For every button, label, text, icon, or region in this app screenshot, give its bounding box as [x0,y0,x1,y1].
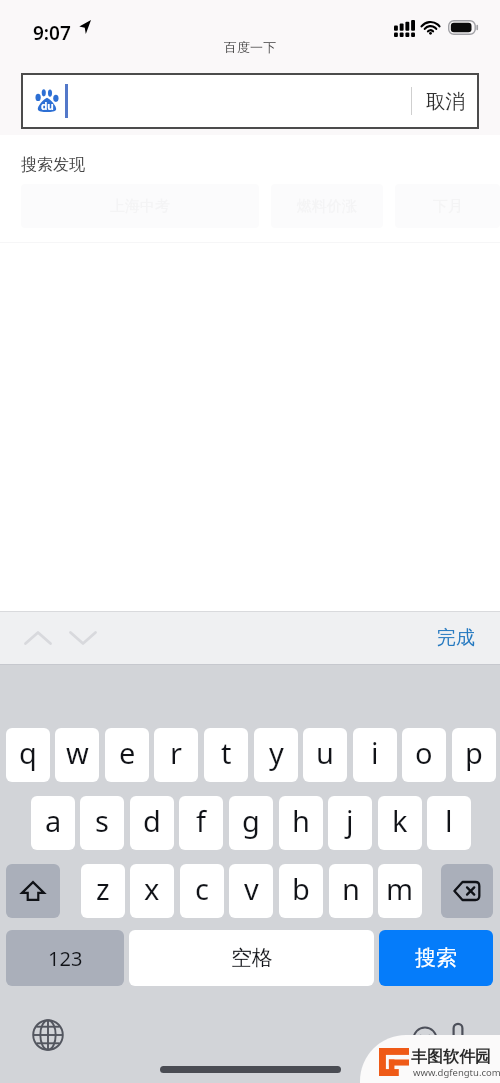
staticText: d [143,801,161,840]
button[interactable]: y [254,728,298,782]
button[interactable]: Backspace [441,864,493,918]
staticText: y [269,733,284,772]
staticText: q [19,733,37,772]
button[interactable]: q [6,728,50,782]
button[interactable]: d [130,796,174,850]
button[interactable]: u [303,728,347,782]
button[interactable]: b [279,864,323,918]
staticText: 完成 [437,626,475,650]
button[interactable]: i [353,728,397,782]
button[interactable]: x [130,864,174,918]
staticText: o [415,733,433,772]
staticText: f [196,801,206,840]
button[interactable]: s [80,796,124,850]
button[interactable]: v [229,864,273,918]
staticText: c [195,869,209,908]
button[interactable]: h [279,796,323,850]
staticText: r [170,733,182,772]
button[interactable]: f [179,796,223,850]
button[interactable]: k [378,796,422,850]
button[interactable]: j [328,796,372,850]
button[interactable]: r [154,728,198,782]
button[interactable]: w [55,728,99,782]
button[interactable]: l [427,796,471,850]
button[interactable]: Shift [6,864,60,918]
staticText: u [316,733,334,772]
staticText: du [41,99,54,113]
button[interactable]: z [81,864,125,918]
button[interactable]: Voice input [444,1021,472,1049]
button[interactable]: Previous field [16,616,60,660]
staticText: m [386,869,414,908]
button[interactable]: g [229,796,273,850]
staticText: 123 [48,945,83,972]
staticText: t [221,733,232,772]
staticText: j [346,801,354,840]
button[interactable]: o [402,728,446,782]
button[interactable]: 搜索 [379,930,493,986]
staticText: k [392,801,408,840]
staticText: w [66,733,89,772]
staticText: s [95,801,109,840]
staticText: v [244,869,259,908]
button[interactable]: 完成 [412,616,500,660]
button[interactable]: Change keyboard [32,1019,64,1051]
button[interactable]: t [204,728,248,782]
button[interactable]: 空格 [129,930,374,986]
staticText: 9:07 [33,20,71,46]
staticText: e [119,733,136,772]
staticText: h [292,801,310,840]
staticText: n [342,869,360,908]
button[interactable]: Next field [61,616,105,660]
button[interactable]: 取消 [412,73,479,129]
button[interactable]: n [329,864,373,918]
staticText: i [371,733,379,772]
staticText: 丰图软件园 [411,1047,491,1067]
button[interactable]: Emoji [411,1025,439,1053]
staticText: l [445,801,453,840]
button[interactable]: p [452,728,496,782]
staticText: 取消 [426,89,465,114]
staticText: a [45,801,62,840]
staticText: z [96,869,110,908]
button[interactable]: e [105,728,149,782]
staticText: p [465,733,483,772]
button[interactable]: m [378,864,422,918]
staticText: 空格 [231,945,273,971]
staticText: 搜索发现 [21,155,85,175]
staticText: www.dgfengtu.com [413,1066,500,1079]
staticText: x [144,869,160,908]
staticText: g [242,801,260,840]
button[interactable]: 123 [6,930,124,986]
button[interactable]: a [31,796,75,850]
button[interactable]: c [180,864,224,918]
staticText: b [292,869,310,908]
staticText: 百度一下 [224,39,276,55]
staticText: 搜索 [415,945,457,971]
